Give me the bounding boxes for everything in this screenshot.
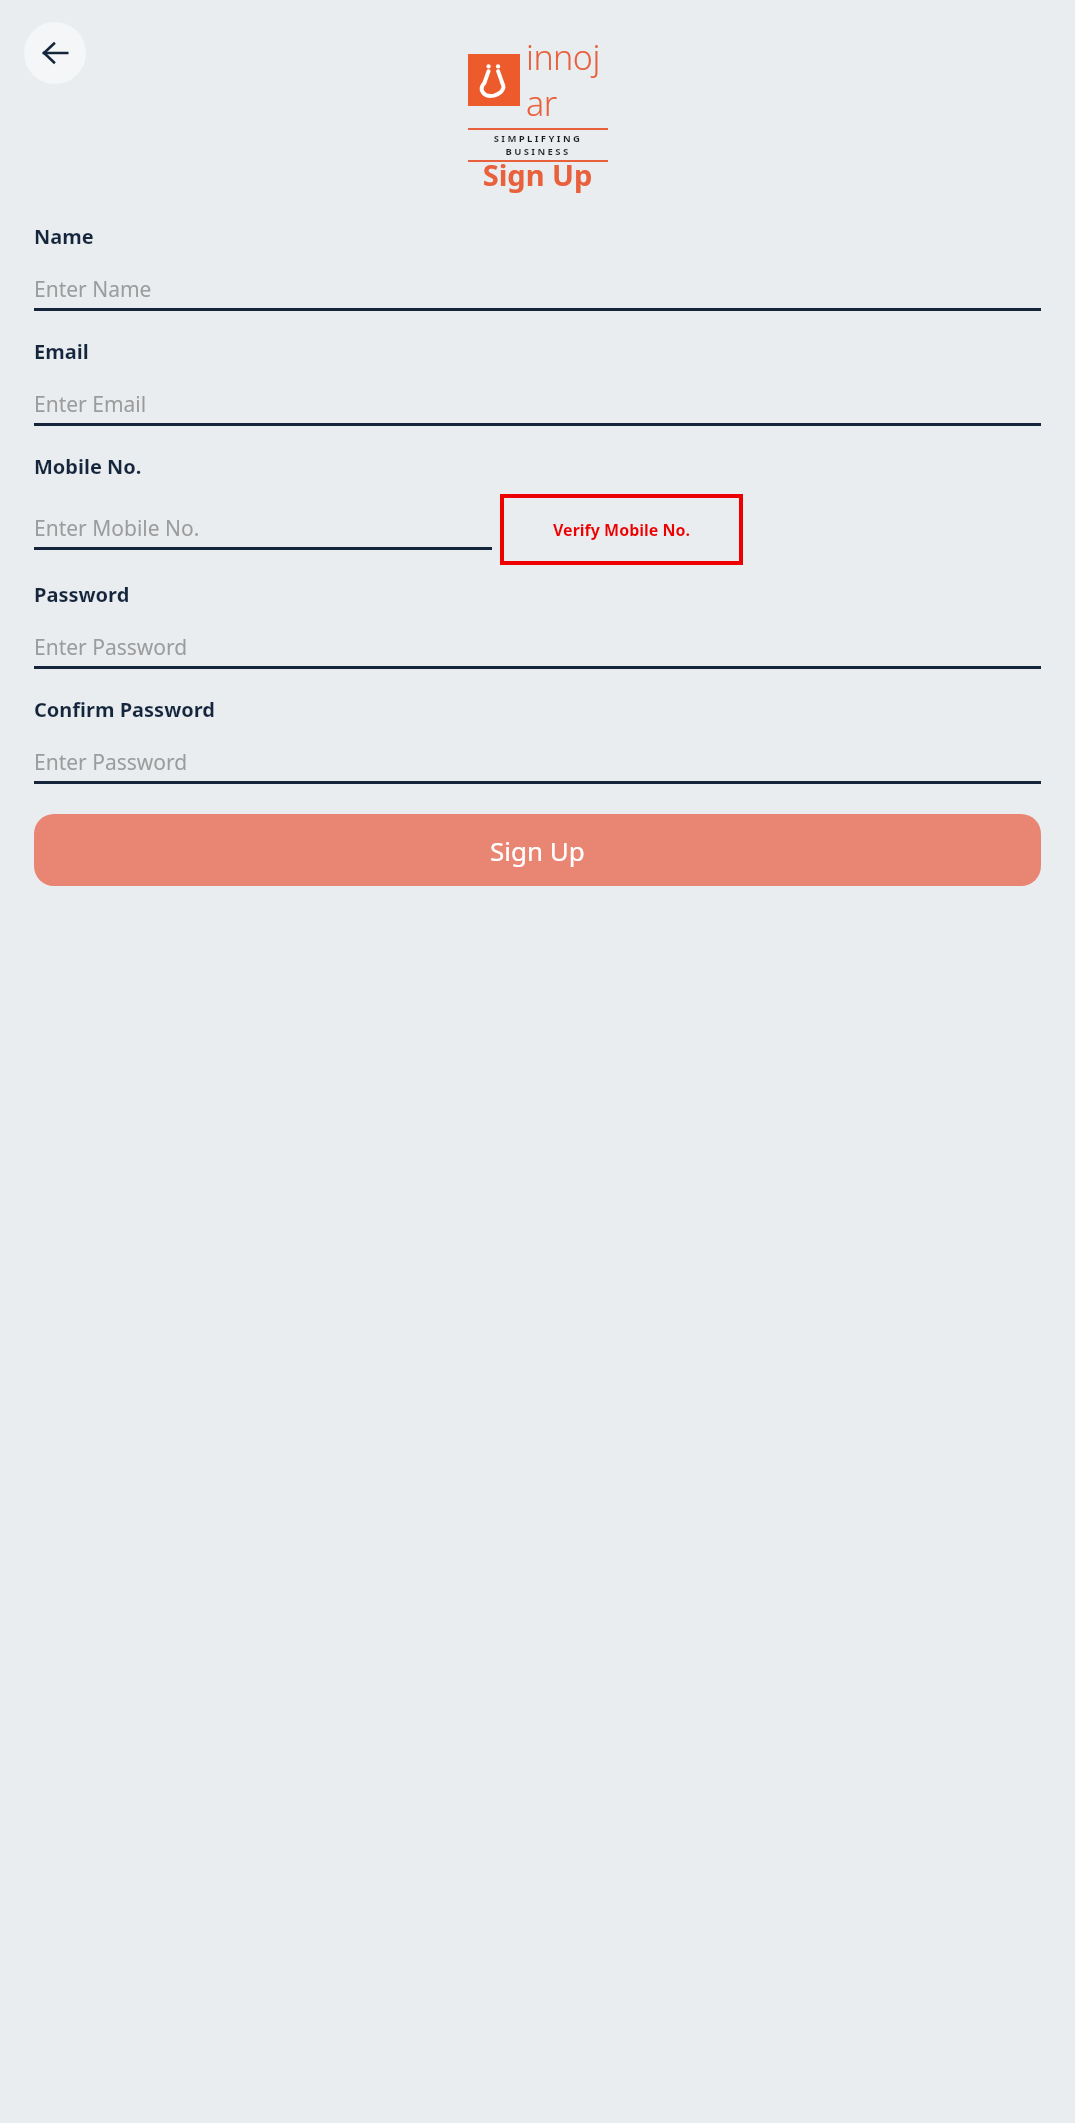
button[interactable]: Enter Mobile No.: [34, 509, 492, 550]
staticText: SIMPLIFYING BUSINESS: [468, 132, 608, 158]
staticText: Mobile No.: [34, 453, 142, 480]
button[interactable]: Back: [24, 22, 86, 84]
staticText: Sign Up: [490, 833, 585, 868]
staticText: Name: [34, 223, 94, 250]
button[interactable]: Enter Name: [34, 270, 1041, 311]
staticText: Enter Password: [34, 748, 188, 777]
staticText: Enter Mobile No.: [34, 514, 200, 543]
staticText: Enter Name: [34, 275, 152, 304]
staticText: Confirm Password: [34, 696, 215, 723]
staticText: innojar: [526, 34, 608, 126]
staticText: Sign Up: [34, 155, 1041, 194]
button[interactable]: Enter Password: [34, 743, 1041, 784]
staticText: Verify Mobile No.: [553, 519, 691, 541]
button[interactable]: Enter Email: [34, 385, 1041, 426]
button[interactable]: Enter Password: [34, 628, 1041, 669]
staticText: Password: [34, 581, 130, 608]
staticText: Enter Email: [34, 390, 147, 419]
staticText: Enter Password: [34, 633, 188, 662]
button[interactable]: Sign Up: [34, 814, 1041, 886]
staticText: Email: [34, 338, 89, 365]
button[interactable]: Verify Mobile No.: [500, 494, 743, 565]
